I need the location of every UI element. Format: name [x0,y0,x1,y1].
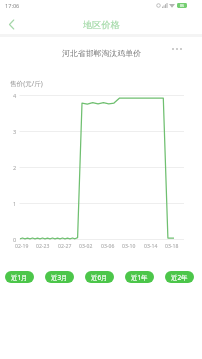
staticText: 03-06 [101,243,115,250]
staticText: 近1月 [11,273,28,282]
staticText: 03-10 [122,243,136,250]
staticText: 02-27 [58,243,72,250]
staticText: 近3月 [51,273,68,282]
staticText: 河北省邯郸淘汰鸡单价 [62,48,141,58]
staticText: 近1年 [131,273,148,282]
staticText: 03-18 [165,243,179,250]
staticText: 03-14 [144,243,158,250]
staticText: 售价(元/斤) [10,79,43,88]
button[interactable]: More options [172,43,188,55]
staticText: 02-19 [15,243,29,250]
staticText: 2 [13,164,17,172]
staticText: 3 [13,128,17,136]
staticText: 地区价格 [83,19,120,31]
button[interactable]: 近1月 [5,271,34,283]
button[interactable]: Back [2,14,20,33]
staticText: 17:06 [5,2,20,10]
staticText: 4 [13,92,17,100]
staticText: 86 [180,3,185,8]
staticText: 近2年 [171,273,188,282]
staticText: 0 [13,236,17,244]
button[interactable]: 近1年 [125,271,154,283]
button[interactable]: 近6月 [85,271,114,283]
staticText: 02-23 [36,243,50,250]
staticText: 近6月 [91,273,108,282]
staticText: 1 [13,200,17,208]
button[interactable]: 近2年 [165,271,194,283]
button[interactable]: 近3月 [45,271,74,283]
staticText: 03-02 [79,243,93,250]
